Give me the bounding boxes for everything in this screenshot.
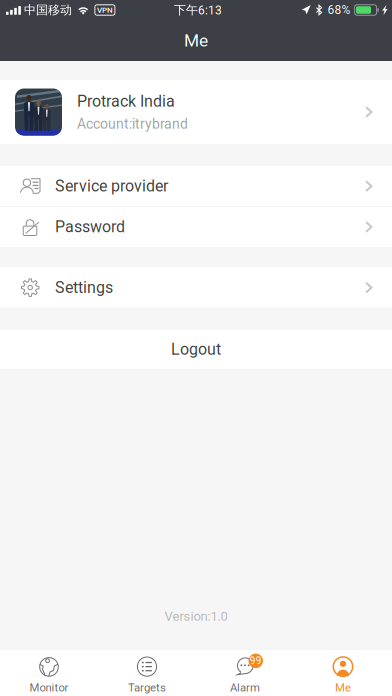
button[interactable]: Service provider — [0, 166, 392, 206]
staticText: 下午6:13 — [174, 2, 222, 17]
button[interactable]: Settings — [0, 267, 392, 308]
staticText: Monitor — [29, 681, 68, 694]
button[interactable]: Password — [0, 207, 392, 247]
staticText: Me — [184, 30, 208, 51]
staticText: Me — [335, 681, 351, 694]
staticText: Alarm — [230, 681, 260, 694]
staticText: Account:itrybrand — [77, 116, 188, 132]
staticText: Version:1.0 — [164, 609, 227, 624]
button[interactable]: Monitor — [0, 649, 98, 696]
staticText: Targets — [128, 681, 166, 694]
staticText: Service provider — [55, 177, 168, 196]
button[interactable]: 99 — [196, 649, 294, 696]
button[interactable]: Logout — [0, 330, 392, 369]
staticText: 99 — [250, 655, 262, 667]
staticText: Protrack India — [77, 92, 175, 111]
staticText: Logout — [171, 340, 221, 359]
staticText: 中国移动 — [24, 2, 72, 17]
staticText: Password — [55, 217, 125, 236]
button[interactable]: Protrack India — [0, 80, 392, 144]
staticText: 68% — [328, 3, 351, 17]
staticText: VPN — [97, 5, 113, 15]
staticText: Settings — [55, 278, 113, 297]
button[interactable]: Me — [294, 649, 392, 696]
button[interactable]: Targets — [98, 649, 196, 696]
